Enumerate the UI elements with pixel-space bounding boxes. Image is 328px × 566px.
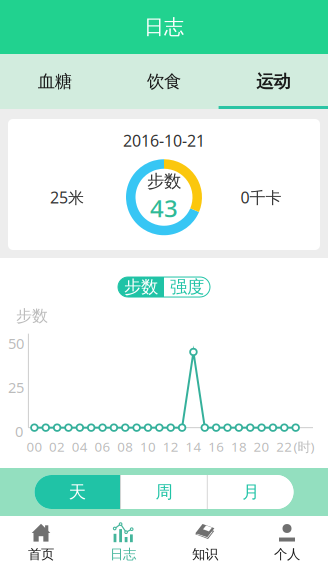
staticText: 2016-10-21 <box>123 130 205 151</box>
staticText: 步数 <box>147 171 181 192</box>
button[interactable]: 日志 <box>82 516 164 566</box>
staticText: 天 <box>69 481 86 503</box>
staticText: 08 <box>117 438 133 455</box>
staticText: 日志 <box>144 15 184 39</box>
staticText: 强度 <box>170 276 204 298</box>
staticText: 50 <box>8 334 24 353</box>
button[interactable]: 血糖 <box>0 54 109 109</box>
staticText: 运动 <box>256 71 290 92</box>
staticText: 周 <box>155 481 172 503</box>
staticText: 步数 <box>124 276 158 298</box>
button[interactable]: 饮食 <box>109 54 219 109</box>
staticText: 18 <box>231 438 247 455</box>
staticText: 知识 <box>192 546 218 562</box>
staticText: (时) <box>293 438 314 455</box>
staticText: 血糖 <box>38 71 72 92</box>
staticText: 16 <box>208 438 224 455</box>
staticText: 日志 <box>110 546 136 562</box>
staticText: 10 <box>140 438 156 455</box>
staticText: 06 <box>95 438 111 455</box>
staticText: 25米 <box>50 187 84 208</box>
button[interactable]: 个人 <box>246 516 328 566</box>
staticText: 0 <box>15 422 23 441</box>
staticText: 20 <box>254 438 270 455</box>
staticText: 43 <box>150 192 178 224</box>
staticText: 步数 <box>16 306 48 326</box>
staticText: 04 <box>72 438 88 455</box>
staticText: 12 <box>163 438 179 455</box>
button[interactable]: 周 <box>121 475 207 509</box>
staticText: 个人 <box>274 546 300 562</box>
staticText: 14 <box>185 438 201 455</box>
staticText: 02 <box>49 438 65 455</box>
button[interactable]: 天 <box>34 475 120 509</box>
button[interactable]: 运动 <box>219 54 328 109</box>
staticText: 月 <box>242 481 259 503</box>
staticText: 00 <box>26 438 42 455</box>
staticText: 首页 <box>28 546 54 562</box>
staticText: 0千卡 <box>240 187 281 208</box>
button[interactable]: 知识 <box>164 516 246 566</box>
staticText: 22 <box>276 438 292 455</box>
staticText: 饮食 <box>147 71 181 92</box>
button[interactable]: 月 <box>208 475 293 509</box>
button[interactable]: 步数 <box>118 277 164 297</box>
button[interactable]: 强度 <box>164 277 210 297</box>
button[interactable]: 首页 <box>0 516 82 566</box>
staticText: 25 <box>8 378 24 397</box>
